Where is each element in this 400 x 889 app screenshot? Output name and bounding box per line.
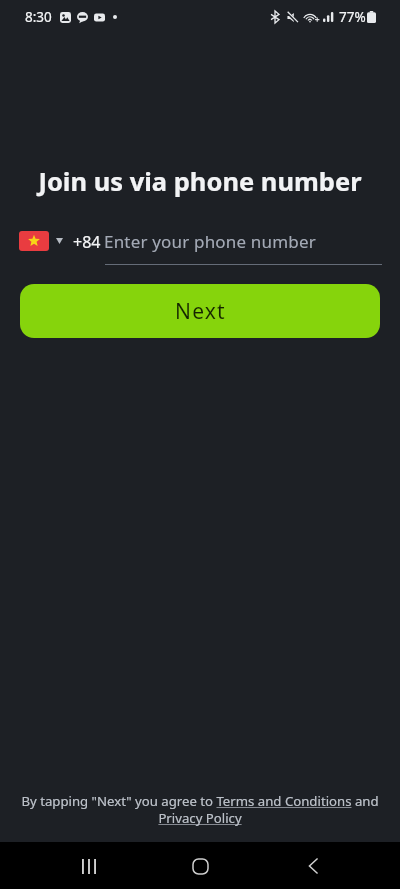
button[interactable]: Back	[291, 844, 335, 888]
button[interactable]: Expand country list	[56, 238, 63, 244]
button[interactable]: Select country code	[19, 231, 49, 251]
button[interactable]: Terms and Conditions	[216, 792, 352, 807]
staticText: Join us via phone number	[0, 164, 400, 199]
staticText: Enter your phone number	[104, 230, 316, 253]
button[interactable]: Home	[178, 844, 222, 888]
staticText: Next	[175, 297, 226, 326]
staticText: +84	[73, 231, 101, 253]
staticText: By tapping "Next" you agree to Terms and…	[12, 792, 388, 827]
button[interactable]: Enter your phone number	[104, 228, 382, 266]
button[interactable]: Privacy Policy	[158, 807, 243, 822]
button[interactable]: Next	[20, 284, 380, 338]
button[interactable]: Recent apps	[67, 844, 111, 888]
staticText: 8:30	[25, 8, 52, 26]
staticText: 77%	[339, 8, 366, 26]
